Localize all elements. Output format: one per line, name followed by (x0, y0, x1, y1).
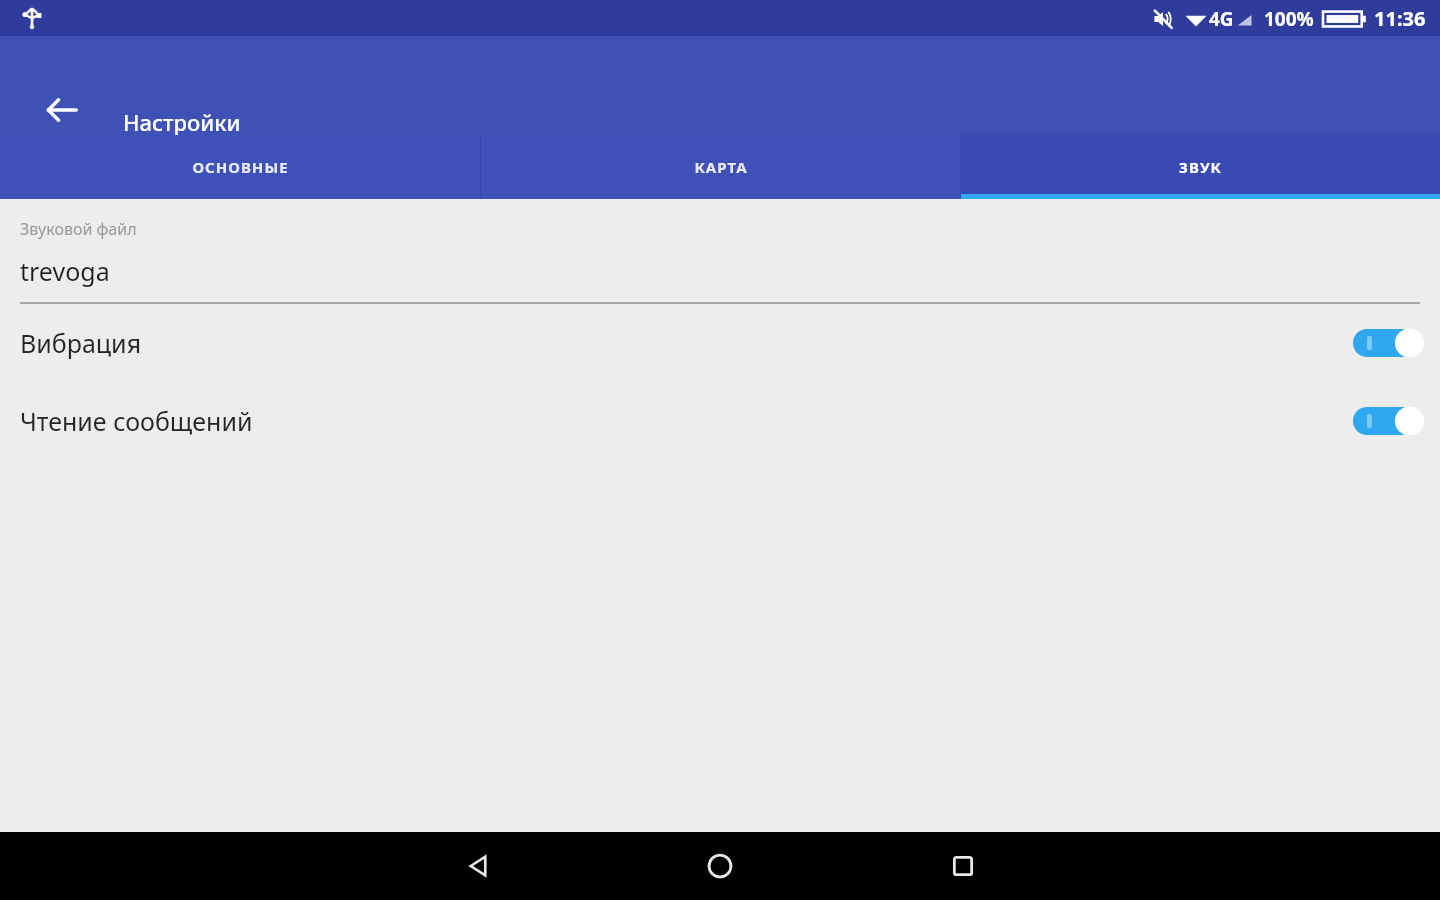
button[interactable]: Recent apps (923, 832, 1003, 900)
staticText: Чтение сообщений (20, 404, 253, 438)
staticText: КАРТА (694, 157, 748, 177)
button[interactable]: Back (438, 832, 518, 900)
button[interactable]: Чтение сообщений (0, 382, 1440, 460)
staticText: 4G (1209, 6, 1234, 32)
staticText: Звуковой файл (20, 218, 137, 240)
staticText: ОСНОВНЫЕ (192, 157, 289, 177)
button[interactable]: Вибрация (0, 304, 1440, 382)
staticText: 100% (1264, 6, 1314, 32)
button[interactable]: Вибрация (1353, 327, 1425, 359)
staticText: 11:36 (1374, 5, 1426, 32)
staticText: ЗВУК (1179, 157, 1222, 177)
button[interactable]: Home (680, 832, 760, 900)
button[interactable]: КАРТА (481, 135, 960, 199)
staticText: Настройки (123, 107, 241, 137)
button[interactable]: Звуковой файл (0, 199, 1440, 304)
button[interactable]: Back (26, 74, 98, 146)
button[interactable]: Чтение сообщений (1353, 405, 1425, 437)
staticText: Вибрация (20, 326, 142, 360)
staticText: trevoga (20, 254, 110, 288)
button[interactable]: ЗВУК (961, 135, 1440, 199)
button[interactable]: ОСНОВНЫЕ (0, 135, 480, 199)
